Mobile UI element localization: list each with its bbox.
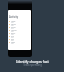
button[interactable]: Market [9, 23, 31, 26]
staticText: 44.7 [11, 37, 14, 38]
staticText: Gym [11, 38, 15, 40]
staticText: Coffee [11, 20, 16, 22]
staticText: 18.0 [11, 25, 14, 26]
button[interactable]: Books [9, 32, 31, 35]
staticText: 9.25 [11, 31, 14, 32]
staticText: 3.10 [11, 28, 14, 29]
staticText: Chemist [11, 29, 17, 31]
button[interactable]: Fuel [9, 35, 31, 38]
button[interactable]: Gym [9, 38, 31, 41]
staticText: Movie [11, 41, 16, 43]
staticText: 12.0 [11, 34, 14, 35]
staticText: Activity [9, 15, 19, 19]
button[interactable]: Movie [9, 41, 31, 44]
staticText: Identify charges fast [16, 59, 49, 63]
button[interactable]: Coffee [9, 20, 31, 23]
staticText: Fuel [11, 35, 14, 37]
staticText: Track spending [23, 63, 42, 67]
staticText: 2.40 [11, 22, 14, 23]
staticText: 29.9 [11, 40, 14, 41]
staticText: Transit [11, 26, 16, 28]
staticText: Books [11, 32, 16, 34]
staticText: Market [11, 23, 16, 25]
button[interactable]: Transit [9, 26, 31, 29]
staticText: 15.5 [11, 43, 14, 44]
button[interactable]: Chemist [9, 29, 31, 32]
